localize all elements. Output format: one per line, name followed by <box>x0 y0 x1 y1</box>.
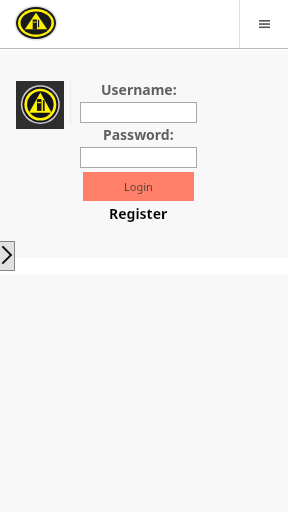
staticText: Username: <box>101 80 177 99</box>
button[interactable]: Login <box>83 172 194 201</box>
button[interactable] <box>80 102 197 123</box>
button[interactable]: Home <box>16 7 56 39</box>
button[interactable] <box>80 147 197 168</box>
staticText: Password: <box>103 125 174 144</box>
button[interactable]: Expand panel <box>0 241 15 271</box>
staticText: Login <box>124 179 153 194</box>
staticText: Register <box>109 204 168 223</box>
button[interactable]: Register <box>80 204 197 223</box>
button[interactable]: Menu <box>240 0 288 48</box>
